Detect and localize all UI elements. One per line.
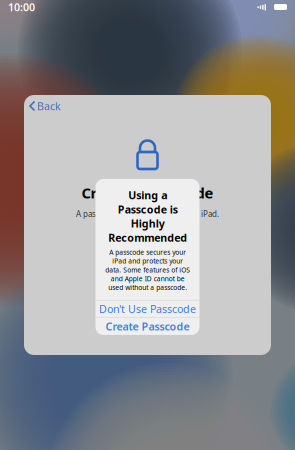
staticText: Create Passcode (105, 319, 189, 333)
button[interactable]: Don't Use Passcode (95, 300, 199, 317)
button[interactable]: Create Passcode (95, 318, 199, 335)
staticText: Back (37, 99, 61, 113)
button[interactable]: Back (24, 94, 61, 118)
staticText: A passcode is required to unlock iPad. (76, 208, 219, 219)
staticText: Don't Use Passcode (99, 302, 196, 316)
staticText: Using a Passcode is Highly Recommended (108, 188, 187, 245)
staticText: Create a Passcode (81, 183, 213, 202)
staticText: 10:00 (8, 0, 35, 14)
staticText: A passcode secures your iPad and protect… (105, 248, 190, 292)
